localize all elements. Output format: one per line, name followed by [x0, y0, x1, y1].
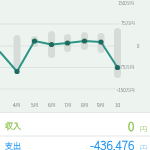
staticText: 5月	[31, 101, 39, 108]
staticText: 収入	[5, 120, 21, 132]
staticText: -436,476	[90, 136, 135, 150]
staticText: 6月	[48, 101, 56, 108]
staticText: 4月	[13, 101, 21, 108]
button[interactable]: 支出	[0, 136, 150, 150]
staticText: -150万円	[117, 87, 135, 94]
staticText: 10	[115, 101, 121, 108]
staticText: 7月	[64, 101, 72, 108]
staticText: 0	[137, 43, 140, 50]
staticText: 150万円	[118, 0, 135, 7]
staticText: 円	[140, 143, 147, 150]
staticText: -75万円	[119, 64, 135, 71]
button[interactable]: 収入	[0, 113, 150, 138]
staticText: 75万円	[121, 20, 135, 27]
staticText: 8月	[81, 101, 89, 108]
staticText: 9月	[97, 101, 105, 108]
staticText: 円	[140, 124, 147, 134]
staticText: 支出	[5, 140, 21, 150]
staticText: 0	[128, 117, 135, 134]
